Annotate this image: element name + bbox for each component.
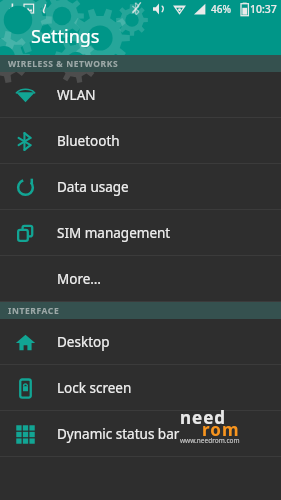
staticText: Lock screen — [57, 379, 132, 397]
staticText: need — [180, 406, 227, 429]
button[interactable]: WLAN — [0, 72, 281, 118]
staticText: WIRELESS & NETWORKS — [8, 58, 119, 70]
other: Dynamic status bar — [13, 422, 37, 446]
staticText: www.needrom.com — [180, 436, 240, 445]
other: WLAN — [13, 83, 37, 107]
staticText: WLAN — [57, 86, 96, 104]
other: Desktop — [13, 330, 37, 354]
staticText: Desktop — [57, 333, 110, 351]
button[interactable]: Bluetooth — [0, 118, 281, 164]
staticText: Data usage — [57, 178, 129, 196]
staticText: 46% — [211, 2, 231, 16]
staticText: 10:37 — [250, 2, 277, 16]
staticText: INTERFACE — [8, 305, 60, 317]
staticText: Dynamic status bar — [57, 425, 180, 443]
other: SIM management — [13, 221, 37, 245]
button[interactable]: Dynamic status bar — [0, 411, 281, 457]
button[interactable]: More… — [0, 256, 281, 302]
staticText: Settings — [31, 24, 100, 49]
button[interactable]: Desktop — [0, 319, 281, 365]
button[interactable]: Lock screen — [0, 365, 281, 411]
other: Lock screen — [13, 376, 37, 400]
staticText: rom — [202, 418, 240, 441]
button[interactable]: Data usage — [0, 164, 281, 210]
staticText: SIM management — [57, 224, 171, 242]
staticText: Bluetooth — [57, 132, 120, 150]
other: Bluetooth — [13, 129, 37, 153]
button[interactable]: SIM management — [0, 210, 281, 256]
other: Data usage — [13, 175, 37, 199]
staticText: More… — [57, 270, 102, 288]
